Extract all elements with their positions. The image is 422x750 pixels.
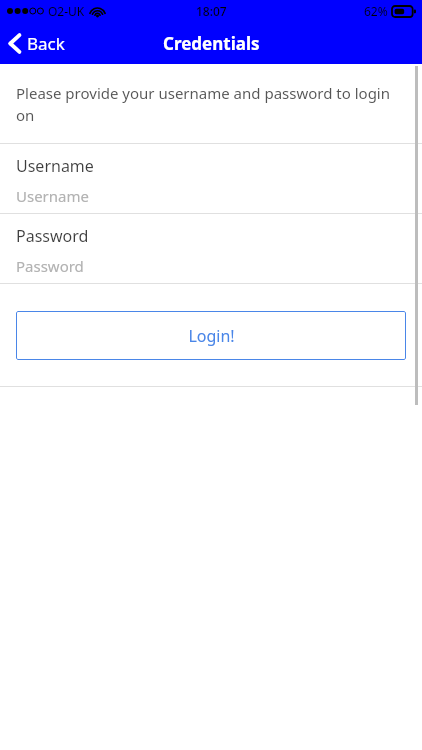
staticText: Login! <box>188 325 235 347</box>
staticText: Password <box>16 225 89 247</box>
staticText: Credentials <box>163 32 260 55</box>
staticText: Username <box>16 186 89 206</box>
button[interactable]: Login! <box>16 311 406 360</box>
button[interactable]: Back <box>0 26 77 61</box>
staticText: Password <box>16 256 84 276</box>
staticText: Back <box>27 32 65 55</box>
staticText: 62% <box>364 3 388 19</box>
staticText: O2-UK <box>48 3 85 19</box>
staticText: Please provide your username and passwor… <box>16 83 404 126</box>
button[interactable]: Username <box>0 144 422 213</box>
button[interactable]: Password <box>0 214 422 283</box>
staticText: 18:07 <box>196 3 227 19</box>
staticText: Username <box>16 155 94 177</box>
